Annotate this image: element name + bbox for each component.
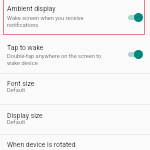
staticText: Wake screen when you receive notificatio… (7, 15, 111, 29)
button[interactable] (0, 136, 150, 150)
button[interactable]: Toggle (127, 48, 144, 60)
staticText: Ambient display (7, 5, 56, 13)
button[interactable] (0, 106, 150, 135)
staticText: Default (7, 87, 26, 94)
staticText: Double-tap anywhere on the screen to wak… (7, 53, 111, 67)
staticText: Font size (7, 80, 35, 88)
button[interactable] (0, 0, 150, 35)
staticText: Display size (7, 112, 43, 120)
staticText: When device is rotated (7, 141, 76, 149)
button[interactable]: Toggle (127, 11, 144, 23)
staticText: Tap to wake (7, 44, 44, 52)
staticText: Default (7, 119, 26, 126)
button[interactable] (0, 36, 150, 74)
button[interactable] (0, 75, 150, 105)
